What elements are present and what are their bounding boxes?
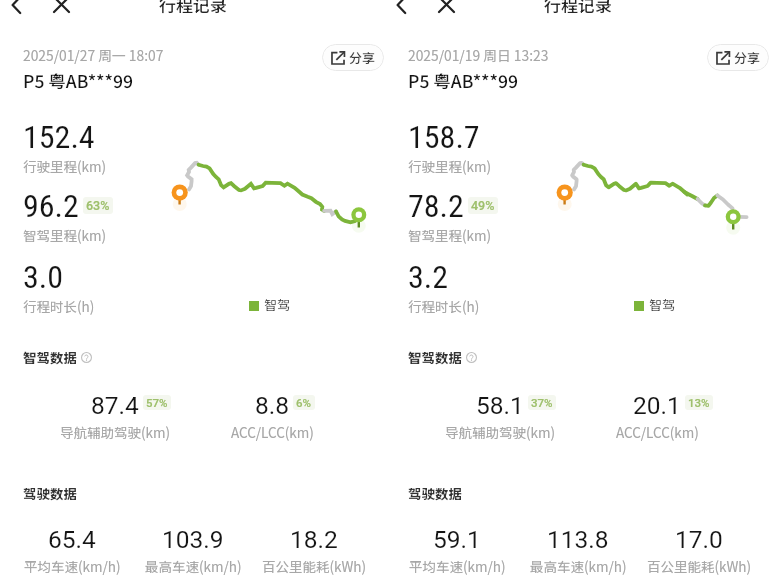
staticText: 百公里能耗(kWh)	[647, 556, 752, 576]
staticText: 87.4	[91, 391, 139, 420]
button[interactable]: Back	[1, 0, 33, 21]
staticText: 导航辅助驾驶(km)	[60, 422, 171, 442]
staticText: 17.0	[675, 525, 723, 554]
staticText: 最高车速(km/h)	[530, 556, 627, 576]
staticText: 导航辅助驾驶(km)	[445, 422, 556, 442]
staticText: 智驾里程(km)	[23, 225, 107, 245]
staticText: 平均车速(km/h)	[24, 556, 121, 576]
staticText: 6%	[296, 396, 312, 409]
staticText: 2025/01/27 周一 18:07	[23, 45, 164, 65]
staticText: 59.1	[433, 525, 481, 554]
staticText: 行程时长(h)	[23, 296, 95, 316]
staticText: 智驾	[264, 295, 291, 314]
staticText: 49%	[471, 198, 495, 213]
staticText: 96.2	[23, 187, 79, 225]
staticText: 智驾	[649, 295, 676, 314]
staticText: 158.7	[408, 118, 480, 156]
staticText: 行驶里程(km)	[23, 156, 107, 176]
staticText: 行程时长(h)	[408, 296, 480, 316]
staticText: P5 粤AB***99	[23, 68, 134, 93]
staticText: 152.4	[23, 118, 95, 156]
staticText: 3.2	[408, 258, 449, 296]
staticText: 行程记录	[159, 0, 227, 17]
staticText: 分享	[734, 48, 761, 67]
staticText: 65.4	[48, 525, 96, 554]
staticText: 平均车速(km/h)	[409, 556, 506, 576]
staticText: 37%	[531, 396, 553, 409]
button[interactable]: Close	[45, 0, 77, 20]
staticText: 最高车速(km/h)	[145, 556, 242, 576]
staticText: ACC/LCC(km)	[616, 422, 699, 442]
button[interactable]: 分享	[322, 44, 384, 71]
staticText: 58.1	[476, 391, 524, 420]
staticText: 驾驶数据	[23, 483, 77, 503]
button[interactable]: Close	[430, 0, 462, 20]
staticText: 百公里能耗(kWh)	[262, 556, 367, 576]
staticText: 103.9	[162, 525, 224, 554]
staticText: 113.8	[547, 525, 609, 554]
staticText: 57%	[146, 396, 168, 409]
staticText: 3.0	[23, 258, 64, 296]
staticText: 78.2	[408, 187, 464, 225]
staticText: 智驾数据	[23, 347, 77, 367]
staticText: 智驾数据	[408, 347, 462, 367]
staticText: 驾驶数据	[408, 483, 462, 503]
staticText: 20.1	[633, 391, 681, 420]
staticText: 2025/01/19 周日 13:23	[408, 45, 549, 65]
staticText: 63%	[86, 198, 110, 213]
button[interactable]: 分享	[707, 44, 769, 71]
button[interactable]: Back	[386, 0, 418, 21]
staticText: 13%	[688, 396, 710, 409]
staticText: 行驶里程(km)	[408, 156, 492, 176]
staticText: 智驾里程(km)	[408, 225, 492, 245]
staticText: 行程记录	[544, 0, 612, 17]
staticText: 18.2	[290, 525, 338, 554]
staticText: 8.8	[255, 391, 289, 420]
staticText: ACC/LCC(km)	[231, 422, 314, 442]
staticText: P5 粤AB***99	[408, 68, 519, 93]
staticText: 分享	[349, 48, 376, 67]
